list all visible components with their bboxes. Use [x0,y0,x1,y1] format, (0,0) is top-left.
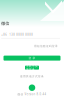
staticText: 微信 Version 8.0.44 [17,92,46,96]
staticText: 手机号快捷登录 [26,64,38,71]
button[interactable]: 登 录 [3,56,60,61]
button[interactable]: WeChat [29,84,35,91]
button[interactable]: 手机号快捷登录 [25,66,39,70]
button[interactable]: 使用其他方式登录 [20,75,44,78]
staticText: 登 录 [28,56,35,60]
button[interactable]: 用短信验证码登录 [34,44,58,48]
staticText: 微信 [1,21,9,26]
staticText: 用短信验证码登录 [34,44,58,48]
staticText: +86 138 8888 8888 [1,33,33,36]
staticText: 使用其他方式登录 [20,75,44,78]
